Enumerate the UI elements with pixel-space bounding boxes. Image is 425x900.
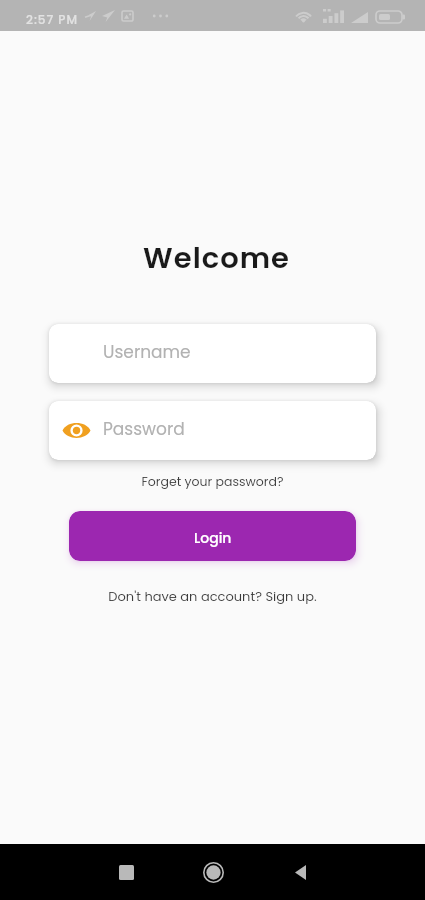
button[interactable]: Show password <box>49 401 376 460</box>
button[interactable]: Login <box>69 511 356 561</box>
staticText: Username <box>103 340 191 364</box>
other: Show password <box>62 422 91 439</box>
button[interactable]: Home <box>185 844 241 900</box>
button[interactable]: Recents <box>98 844 154 900</box>
button[interactable]: Don't have an account? Sign up. <box>0 587 425 605</box>
button[interactable]: Forget your password? <box>0 473 425 490</box>
staticText: Welcome <box>4 238 425 279</box>
staticText: 2:57 PM <box>26 11 79 28</box>
button[interactable]: Username <box>49 324 376 383</box>
staticText: Password <box>103 417 185 441</box>
staticText: Login <box>194 528 232 548</box>
button[interactable]: Back <box>272 844 328 900</box>
